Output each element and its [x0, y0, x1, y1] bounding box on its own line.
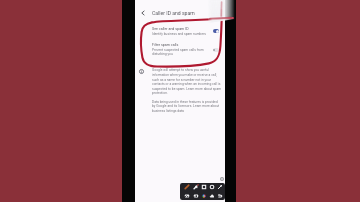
button[interactable]: Undo	[216, 191, 224, 200]
staticText: Prevent suspected spam calls from distur…	[152, 48, 204, 56]
button[interactable]: Shape	[208, 191, 216, 200]
button[interactable]: Highlighter	[191, 183, 200, 191]
button[interactable]: See caller and spam ID	[135, 22, 225, 40]
staticText: See caller and spam ID	[152, 27, 189, 31]
button[interactable]: Switch on	[213, 29, 219, 33]
staticText: Data being used in these features is pro…	[152, 100, 218, 104]
button[interactable]: Filter spam calls	[135, 40, 225, 59]
staticText: Identify business and spam numbers	[152, 32, 206, 36]
staticText: Caller ID and spam	[152, 10, 195, 16]
button[interactable]: Arrow	[216, 183, 224, 191]
button[interactable]: Switch off	[213, 48, 219, 52]
button[interactable]: Rectangle	[200, 183, 208, 191]
button[interactable]: Blur	[191, 191, 200, 200]
staticText: contacts or a warning when an incoming c…	[152, 82, 221, 86]
staticText: by Google and its licensors. Learn more …	[152, 104, 220, 108]
staticText: information when you make or receive a c…	[152, 73, 217, 77]
button[interactable]: Move toolbar	[220, 177, 224, 181]
button[interactable]: Text box	[182, 191, 191, 200]
button[interactable]: Oval	[208, 183, 216, 191]
staticText: Filter spam calls	[152, 43, 179, 47]
staticText: business listings data	[152, 109, 184, 113]
button[interactable]: Back	[136, 6, 149, 19]
button[interactable]: Color	[200, 191, 208, 200]
staticText: protection.	[152, 91, 168, 95]
staticText: such as a name for a number not in your	[152, 78, 211, 82]
staticText: suspected to be spam. Learn more about s…	[152, 87, 222, 91]
button[interactable]: Pen	[182, 183, 191, 191]
staticText: Google will attempt to show you useful	[152, 68, 209, 72]
